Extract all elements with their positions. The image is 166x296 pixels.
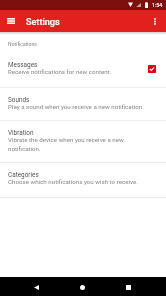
staticText: 1:54 xyxy=(152,2,163,8)
staticText: Play a sound when you receive a new noti… xyxy=(8,103,144,110)
button[interactable]: Recent apps xyxy=(120,279,137,295)
button[interactable]: Vibration xyxy=(0,120,166,162)
staticText: Vibrate the device when you receive a ne… xyxy=(8,136,150,152)
staticText: Notifications xyxy=(8,41,37,47)
staticText: Sounds xyxy=(8,96,30,104)
staticText: Messages xyxy=(8,61,38,69)
staticText: Vibration xyxy=(8,129,34,137)
button[interactable]: Back xyxy=(28,279,45,295)
staticText: Settings xyxy=(26,17,60,28)
staticText: Receive notifications for new content. xyxy=(8,68,112,75)
button[interactable]: Home xyxy=(74,279,91,295)
staticText: Categories xyxy=(8,171,39,179)
staticText: Choose which notifications you wish to r… xyxy=(8,178,138,185)
button[interactable]: More options xyxy=(147,13,163,29)
button[interactable]: Categories xyxy=(0,162,166,197)
button[interactable]: Sounds xyxy=(0,87,166,120)
button[interactable]: Messages xyxy=(0,52,166,87)
button[interactable]: Open navigation drawer xyxy=(3,13,19,29)
